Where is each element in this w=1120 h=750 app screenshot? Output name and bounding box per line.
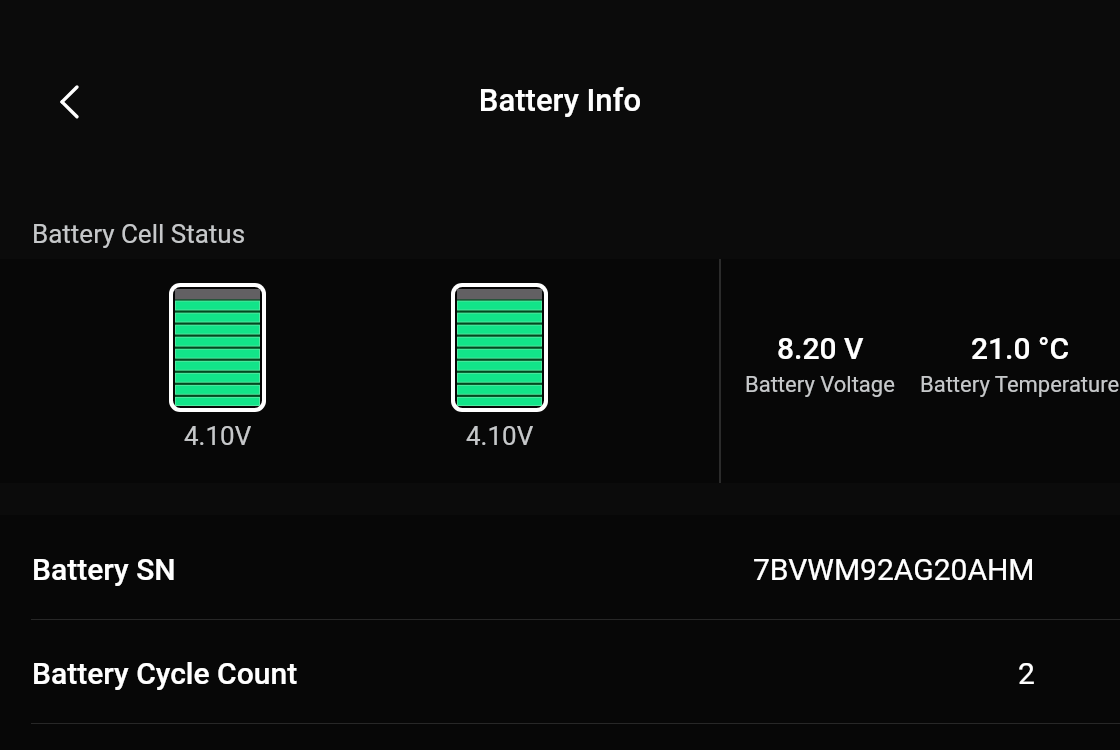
staticText: 4.10V [184, 421, 252, 451]
staticText: Battery Temperature [920, 372, 1120, 398]
staticText: Battery Cycle Count [32, 656, 298, 691]
staticText: 4.10V [466, 421, 534, 451]
staticText: Battery Info [0, 82, 1120, 118]
staticText: Battery Voltage [745, 372, 895, 398]
button[interactable]: Battery Cycle Count [0, 619, 1120, 723]
button[interactable]: Back [36, 77, 84, 125]
staticText: 7BVWM92AG20AHM [753, 552, 1035, 587]
staticText: 21.0 °C [971, 331, 1069, 366]
staticText: 8.20 V [777, 331, 864, 366]
staticText: Battery SN [32, 552, 176, 587]
button[interactable]: Battery SN [0, 515, 1120, 619]
staticText: 2 [1018, 656, 1035, 691]
staticText: Battery Cell Status [32, 219, 246, 249]
